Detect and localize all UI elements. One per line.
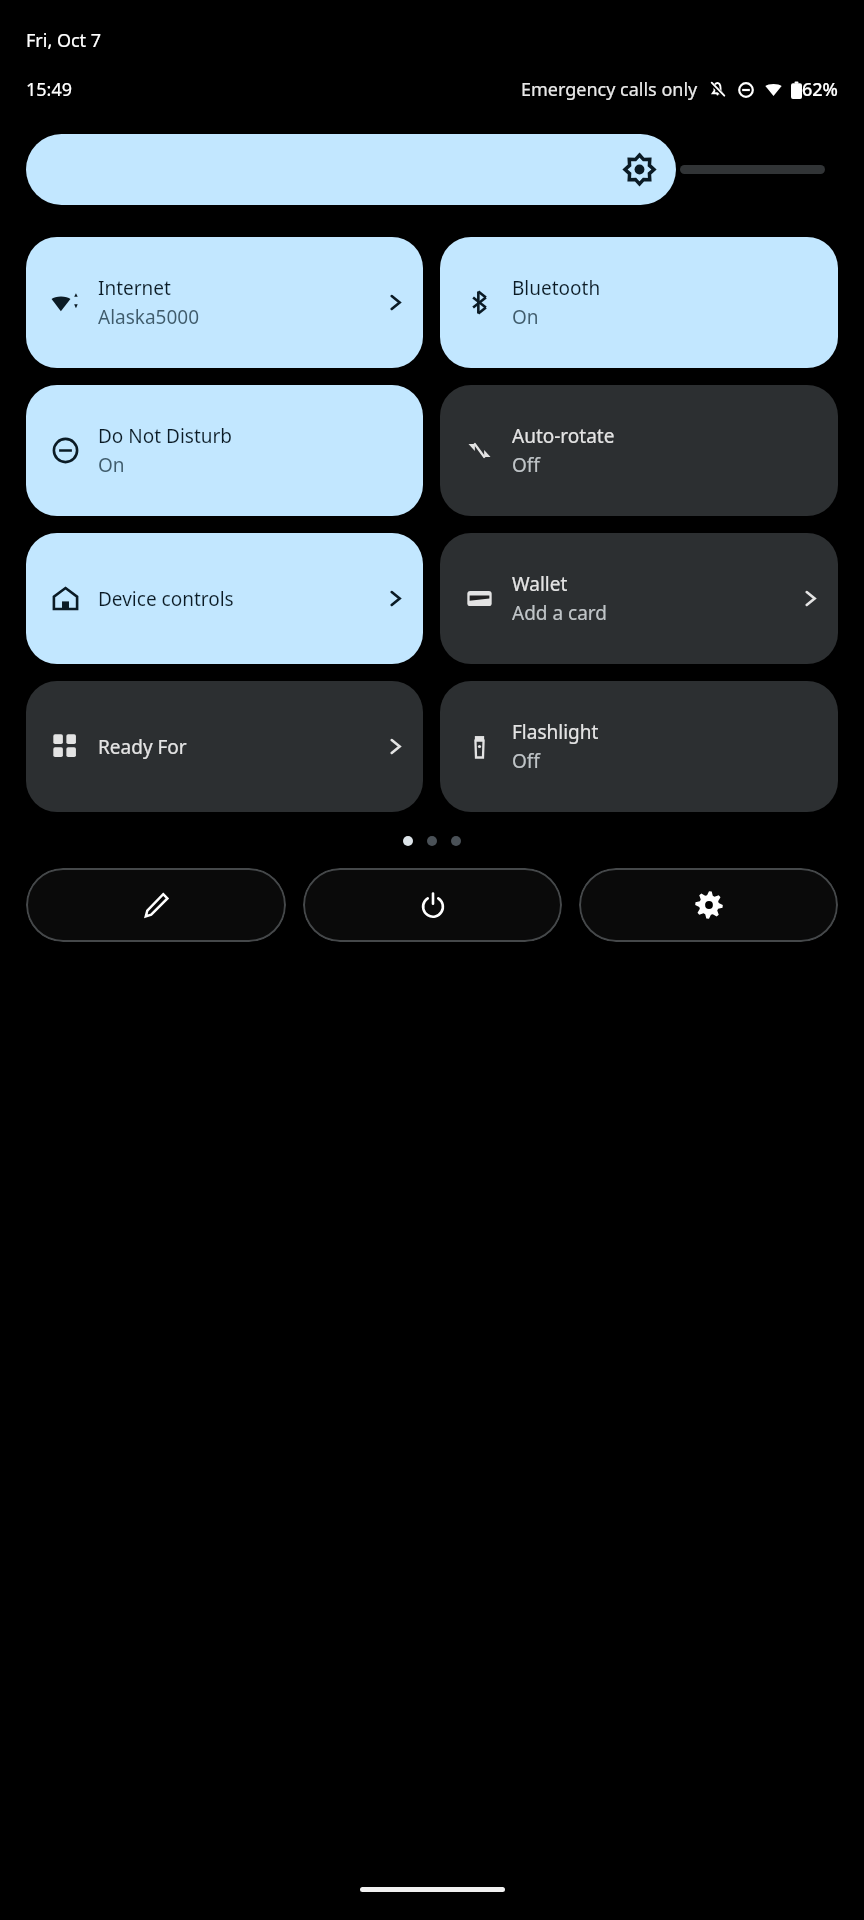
- staticText: 62%: [802, 77, 838, 102]
- staticText: Fri, Oct 7: [26, 28, 102, 53]
- staticText: Auto-rotate: [512, 423, 615, 449]
- button[interactable]: Power: [303, 868, 562, 942]
- button[interactable]: Device controls: [26, 533, 423, 664]
- staticText: On: [512, 304, 539, 330]
- staticText: Alaska5000: [98, 304, 200, 330]
- staticText: Add a card: [512, 600, 607, 626]
- button[interactable]: Do Not Disturb: [26, 385, 423, 516]
- button[interactable]: Brightness: [26, 134, 676, 205]
- staticText: Off: [512, 452, 540, 478]
- staticText: Device controls: [98, 586, 234, 612]
- button[interactable]: Edit: [26, 868, 286, 942]
- button[interactable]: Settings: [579, 868, 838, 942]
- button[interactable]: Bluetooth: [440, 237, 838, 368]
- staticText: Off: [512, 748, 540, 774]
- staticText: Flashlight: [512, 719, 599, 745]
- button[interactable]: Wallet: [440, 533, 838, 664]
- staticText: Wallet: [512, 571, 568, 597]
- staticText: On: [98, 452, 125, 478]
- staticText: Internet: [98, 275, 171, 301]
- staticText: Ready For: [98, 734, 187, 760]
- staticText: 15:49: [26, 77, 73, 102]
- button[interactable]: Ready For: [26, 681, 423, 812]
- button[interactable]: Flashlight: [440, 681, 838, 812]
- staticText: Emergency calls only: [521, 77, 698, 102]
- staticText: Bluetooth: [512, 275, 601, 301]
- staticText: Do Not Disturb: [98, 423, 233, 449]
- button[interactable]: Internet: [26, 237, 423, 368]
- button[interactable]: Auto-rotate: [440, 385, 838, 516]
